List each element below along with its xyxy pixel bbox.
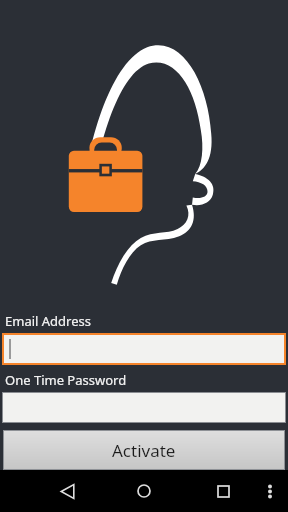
button[interactable]	[4, 335, 284, 363]
button[interactable]: Recent apps	[204, 472, 242, 510]
button[interactable]: More options	[255, 476, 285, 506]
staticText: One Time Password	[5, 371, 127, 389]
button[interactable]: Activate	[4, 431, 284, 469]
staticText: Activate	[112, 439, 176, 462]
button[interactable]: Back	[48, 472, 86, 510]
button[interactable]: Home	[125, 472, 163, 510]
staticText: Email Address	[5, 312, 91, 330]
